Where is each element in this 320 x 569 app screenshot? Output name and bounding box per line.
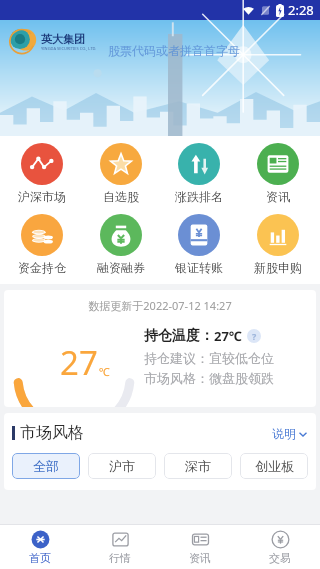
staticText: 股票代码或者拼音首字母 <box>108 43 240 58</box>
button[interactable]: 全部 <box>12 453 80 479</box>
staticText: 数据更新于2022-07-12 14:27 <box>4 298 316 313</box>
staticText: 新股申购 <box>254 260 302 275</box>
button[interactable]: 新股申购 <box>242 214 314 275</box>
button[interactable]: 深市 <box>164 453 232 479</box>
button[interactable]: 自选股 <box>85 143 157 204</box>
button[interactable]: 融资融券 <box>85 214 157 275</box>
staticText: 英大集团 <box>41 32 85 46</box>
staticText: 银证转账 <box>175 260 223 275</box>
staticText: 资讯 <box>266 189 290 204</box>
staticText: YINGDA SECURITIES CO., LTD. <box>41 46 97 51</box>
button[interactable]: 行情 <box>80 525 160 569</box>
staticText: 2:28 <box>288 1 314 19</box>
button[interactable]: 首页 <box>0 525 80 569</box>
staticText: 行情 <box>109 551 131 565</box>
staticText: 27℃ <box>214 327 242 345</box>
button[interactable]: 沪深市场 <box>6 143 78 204</box>
button[interactable]: 创业板 <box>240 453 308 479</box>
staticText: 资金持仓 <box>18 260 66 275</box>
button[interactable]: 涨跌排名 <box>163 143 235 204</box>
staticText: 深市 <box>185 458 211 474</box>
button[interactable]: 说明 <box>272 426 308 441</box>
staticText: 全部 <box>33 458 59 474</box>
staticText: 持仓建议：宜较低仓位 <box>144 350 274 366</box>
staticText: 沪深市场 <box>18 189 66 204</box>
button[interactable]: 银证转账 <box>163 214 235 275</box>
button[interactable]: 说明 <box>247 329 261 343</box>
staticText: 市场风格 <box>20 423 84 443</box>
staticText: ? <box>252 330 257 342</box>
staticText: 交易 <box>269 551 291 565</box>
staticText: 资讯 <box>189 551 211 565</box>
staticText: 沪市 <box>109 458 135 474</box>
button[interactable]: 资讯 <box>160 525 240 569</box>
button[interactable]: 交易 <box>240 525 320 569</box>
staticText: 融资融券 <box>97 260 145 275</box>
staticText: 27 <box>60 340 98 385</box>
button[interactable]: 资讯 <box>242 143 314 204</box>
staticText: 说明 <box>272 426 296 441</box>
staticText: 创业板 <box>255 458 294 474</box>
staticText: 市场风格：微盘股领跌 <box>144 370 274 386</box>
button[interactable]: 资金持仓 <box>6 214 78 275</box>
staticText: 持仓温度： <box>144 327 214 345</box>
staticText: 涨跌排名 <box>175 189 223 204</box>
staticText: 自选股 <box>103 189 139 204</box>
staticText: 首页 <box>29 551 51 565</box>
button[interactable]: 沪市 <box>88 453 156 479</box>
staticText: ℃ <box>99 364 110 379</box>
